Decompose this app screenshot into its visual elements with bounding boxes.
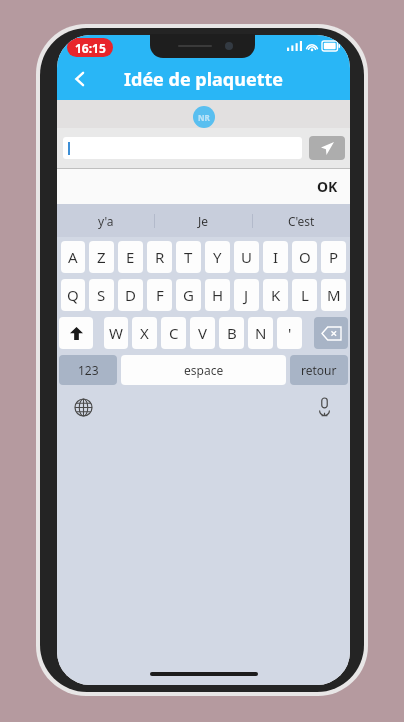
button[interactable]: C [161, 317, 186, 349]
button[interactable]: N [248, 317, 273, 349]
staticText: U [241, 247, 252, 267]
button[interactable]: G [176, 279, 201, 311]
button[interactable]: H [205, 279, 230, 311]
button[interactable]: B [219, 317, 244, 349]
button[interactable]: X [132, 317, 157, 349]
button[interactable]: U [234, 241, 259, 273]
button[interactable]: Q [61, 279, 85, 311]
button[interactable]: I [263, 241, 288, 273]
staticText: Q [67, 285, 79, 305]
staticText: ' [288, 323, 292, 343]
staticText: D [125, 285, 136, 305]
staticText: K [271, 285, 281, 305]
staticText: J [244, 285, 249, 305]
button[interactable]: P [321, 241, 346, 273]
staticText: espace [184, 362, 224, 378]
button[interactable] [63, 137, 302, 159]
staticText: 123 [78, 362, 99, 378]
button[interactable]: ' [277, 317, 302, 349]
button[interactable]: R [147, 241, 172, 273]
button[interactable]: D [118, 279, 143, 311]
button[interactable]: retour [290, 355, 348, 385]
staticText: G [183, 285, 194, 305]
button[interactable]: K [263, 279, 288, 311]
button[interactable]: 123 [59, 355, 117, 385]
button[interactable]: Back [63, 62, 97, 96]
button[interactable]: V [190, 317, 215, 349]
button[interactable]: O [292, 241, 317, 273]
staticText: R [155, 247, 165, 267]
staticText: W [109, 323, 123, 343]
button[interactable]: Dictate [310, 393, 338, 421]
staticText: retour [301, 362, 337, 378]
staticText: C [169, 323, 179, 343]
staticText: Je [198, 213, 209, 229]
button[interactable]: S [89, 279, 114, 311]
button[interactable]: C'est [253, 204, 350, 237]
staticText: A [68, 247, 78, 267]
staticText: V [198, 323, 208, 343]
button[interactable]: Je [155, 204, 252, 237]
staticText: OK [317, 177, 338, 196]
button[interactable]: E [118, 241, 143, 273]
button[interactable]: Change keyboard [69, 393, 97, 421]
staticText: S [97, 285, 106, 305]
button[interactable]: A [61, 241, 85, 273]
staticText: H [212, 285, 224, 305]
button[interactable]: M [321, 279, 346, 311]
staticText: P [329, 247, 339, 267]
button[interactable]: J [234, 279, 259, 311]
button[interactable]: Y [205, 241, 230, 273]
staticText: I [273, 247, 279, 267]
button[interactable]: L [292, 279, 317, 311]
staticText: Y [213, 247, 222, 267]
button[interactable]: W [104, 317, 128, 349]
staticText: N [255, 323, 267, 343]
button[interactable]: Z [89, 241, 114, 273]
staticText: O [299, 247, 311, 267]
staticText: L [301, 285, 309, 305]
staticText: NR [198, 112, 210, 123]
staticText: T [184, 247, 193, 267]
staticText: y'a [98, 213, 114, 229]
button[interactable]: T [176, 241, 201, 273]
button[interactable]: Shift [59, 317, 93, 349]
staticText: X [140, 323, 149, 343]
button[interactable]: y'a [57, 204, 154, 237]
staticText: 16:15 [75, 40, 106, 56]
button[interactable]: OK [307, 171, 348, 202]
staticText: Z [97, 247, 106, 267]
button[interactable]: Send [309, 136, 345, 160]
staticText: M [327, 285, 341, 305]
button[interactable]: espace [121, 355, 286, 385]
button[interactable]: Backspace [314, 317, 348, 349]
staticText: F [156, 285, 164, 305]
button[interactable]: F [147, 279, 172, 311]
staticText: Idée de plaquette [124, 67, 284, 92]
staticText: C'est [288, 213, 315, 229]
staticText: B [227, 323, 237, 343]
staticText: E [126, 247, 135, 267]
